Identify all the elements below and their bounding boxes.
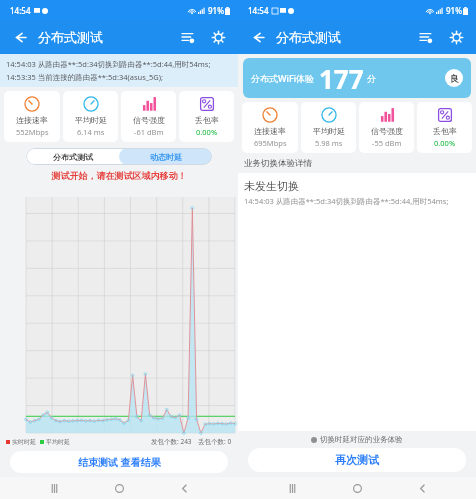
staticText: 分布式测试 <box>38 29 103 45</box>
staticText: 552Mbps <box>16 127 49 137</box>
staticText: 测试开始，请在测试区域内移动！ <box>0 170 238 181</box>
button[interactable]: History <box>176 25 200 49</box>
button[interactable]: 再次测试 <box>248 448 466 472</box>
staticText: 695Mbps <box>254 138 287 148</box>
staticText: 信号强度 <box>133 115 165 125</box>
button[interactable]: 丢包率 <box>179 91 234 142</box>
button[interactable]: 信号强度 <box>359 102 414 153</box>
staticText: 平均时延 <box>75 115 107 125</box>
button[interactable]: Back <box>173 477 195 499</box>
staticText: 丢包率 <box>195 115 219 125</box>
button[interactable]: History <box>414 25 438 49</box>
staticText: 14:54:03 从路由器**:5d:34切换到路由器**:5d:44,用时54… <box>244 196 449 206</box>
button[interactable]: Recents <box>43 477 65 499</box>
staticText: -61 dBm <box>134 127 164 137</box>
staticText: 连接速率 <box>254 126 286 136</box>
staticText: 14:54 <box>10 5 31 16</box>
staticText: 14:54:03 从路由器**:5d:34切换到路由器**:5d:44,用时54… <box>6 59 211 69</box>
staticText: 结束测试 查看结果 <box>78 455 161 469</box>
button[interactable]: 连接速率 <box>242 102 298 153</box>
staticText: 分布式WiFi体验 <box>251 72 315 84</box>
button[interactable]: 平均时延 <box>301 102 356 153</box>
staticText: -55 dBm <box>372 138 402 148</box>
staticText: 实时时延 <box>12 438 36 446</box>
button[interactable]: 分布式WiFi体验 <box>243 58 471 98</box>
staticText: 平均时延 <box>313 126 345 136</box>
button[interactable]: Back <box>411 477 433 499</box>
button[interactable]: 丢包率 <box>417 102 472 153</box>
staticText: 连接速率 <box>16 115 48 125</box>
button[interactable]: 信号强度 <box>121 91 176 142</box>
button[interactable]: 结束测试 查看结果 <box>10 451 228 473</box>
staticText: 177 <box>319 61 364 96</box>
staticText: 分 <box>367 73 376 84</box>
staticText: 0.00% <box>434 138 456 148</box>
staticText: 未发生切换 <box>244 179 299 193</box>
staticText: 6.14 ms <box>77 127 105 137</box>
staticText: 发包个数: 243 <box>151 437 192 446</box>
staticText: 0.00% <box>196 127 218 137</box>
staticText: 91% <box>446 5 462 16</box>
staticText: 14:54 <box>248 5 269 16</box>
staticText: 丢包个数: 0 <box>198 437 232 446</box>
staticText: 5.98 ms <box>315 138 343 148</box>
button[interactable]: 分布式测试 <box>26 148 119 165</box>
staticText: 平均时延 <box>46 438 70 446</box>
staticText: 分布式测试 <box>276 29 341 45</box>
button[interactable]: Settings <box>444 25 468 49</box>
staticText: 切换时延对应的业务体验 <box>320 435 403 444</box>
staticText: 91% <box>208 5 224 16</box>
button[interactable]: 动态时延 <box>119 148 212 165</box>
button[interactable]: Recents <box>281 477 303 499</box>
button[interactable]: Back <box>8 25 32 49</box>
staticText: 信号强度 <box>371 126 403 136</box>
staticText: 分布式测试 <box>53 152 93 162</box>
button[interactable]: Back <box>246 25 270 49</box>
staticText: 良 <box>450 73 459 84</box>
button[interactable]: Settings <box>206 25 230 49</box>
button[interactable]: Home <box>346 477 368 499</box>
staticText: 动态时延 <box>150 152 182 162</box>
button[interactable]: Home <box>108 477 130 499</box>
button[interactable]: 平均时延 <box>63 91 118 142</box>
button[interactable]: 连接速率 <box>4 91 60 142</box>
staticText: 业务切换体验详情 <box>244 158 312 169</box>
staticText: 14:53:35 当前连接的路由器**:5d:34(asus_5G); <box>6 72 164 82</box>
staticText: 丢包率 <box>433 126 457 136</box>
staticText: 再次测试 <box>335 453 379 467</box>
